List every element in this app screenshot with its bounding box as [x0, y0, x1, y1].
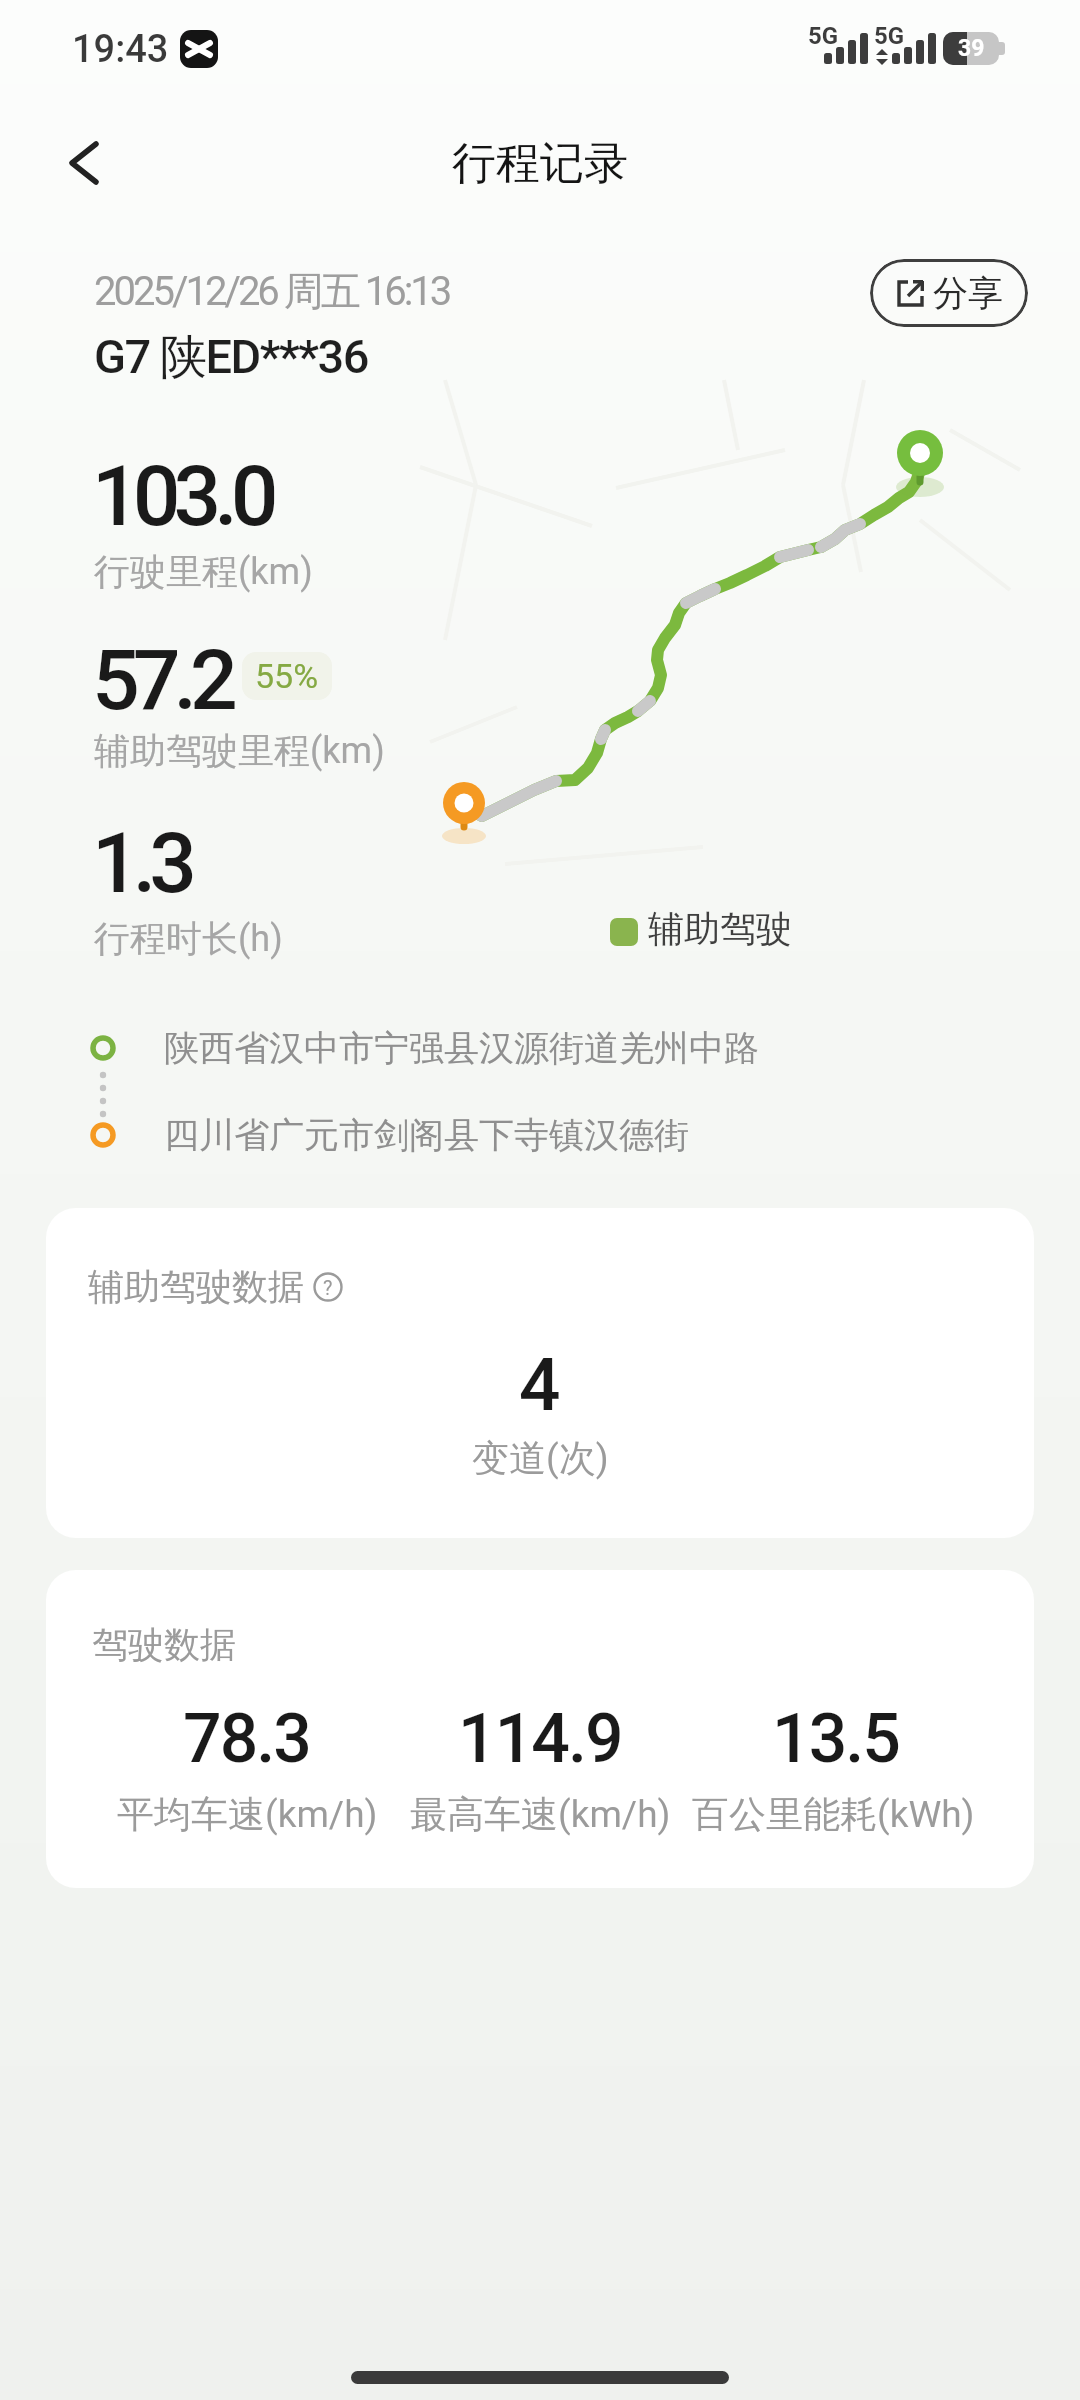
staticText: 13.5 — [772, 1699, 899, 1779]
staticText: 2025/12/26 周五 16:13 — [94, 266, 450, 316]
staticText: 114.9 — [458, 1699, 622, 1779]
staticText: 4 — [519, 1342, 561, 1428]
staticText: 1.3 — [92, 814, 190, 912]
staticText: 57.2 — [92, 631, 231, 729]
staticText: 行程记录 — [452, 136, 628, 191]
staticText: 39 — [958, 35, 985, 62]
staticText: 19:43 — [72, 27, 169, 72]
staticText: 辅助驾驶数据 — [88, 1264, 304, 1309]
button[interactable]: ? — [312, 1271, 344, 1303]
staticText: 辅助驾驶 — [648, 906, 792, 951]
staticText: 变道(次) — [472, 1435, 609, 1482]
staticText: 辅助驾驶里程(km) — [94, 728, 385, 773]
staticText: 55% — [255, 656, 319, 696]
staticText: 78.3 — [183, 1699, 310, 1779]
staticText: 行程时长(h) — [94, 916, 283, 961]
staticText: 百公里能耗(kWh) — [692, 1791, 975, 1838]
staticText: 最高车速(km/h) — [410, 1791, 671, 1838]
staticText: 驾驶数据 — [92, 1622, 236, 1667]
button[interactable]: 分享 — [870, 259, 1028, 327]
staticText: 陕西省汉中市宁强县汉源街道羌州中路 — [164, 1026, 759, 1070]
button[interactable] — [56, 134, 116, 194]
staticText: G7 陕ED***36 — [94, 328, 369, 387]
staticText: 平均车速(km/h) — [117, 1791, 378, 1838]
staticText: 分享 — [933, 271, 1003, 315]
staticText: 103.0 — [92, 447, 272, 545]
staticText: 5G — [874, 22, 905, 50]
staticText: 四川省广元市剑阁县下寺镇汉德街 — [164, 1113, 689, 1157]
staticText: 行驶里程(km) — [94, 549, 313, 594]
staticText: ? — [323, 1276, 333, 1299]
staticText: 5G — [808, 22, 839, 50]
